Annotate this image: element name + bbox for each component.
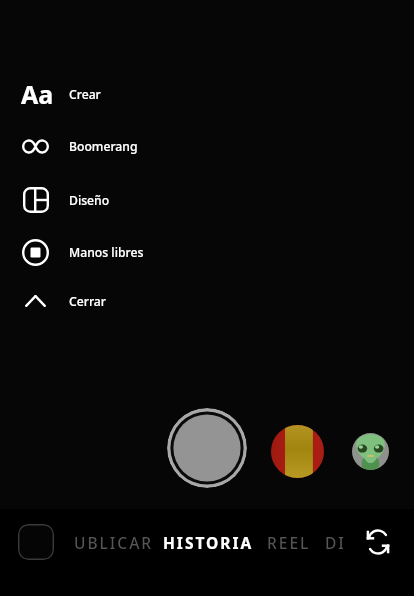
button[interactable]: Cambiar cámara [360,524,396,560]
staticText: Manos libres [69,244,144,261]
staticText: HISTORIA [163,532,254,553]
button[interactable]: Galería [18,524,54,560]
staticText: Boomerang [69,138,138,155]
button[interactable]: DI [325,528,346,556]
staticText: UBLICAR [74,532,154,553]
button[interactable]: Diseño [13,182,124,218]
button[interactable]: UBLICAR [74,528,154,556]
button[interactable]: Cerrar [13,283,120,319]
button[interactable]: Manos libres [13,234,158,270]
staticText: Cerrar [69,293,106,310]
staticText: Aa [21,77,54,111]
staticText: Crear [69,86,101,103]
staticText: REEL [267,532,311,553]
button[interactable]: Filtro alien [352,433,389,470]
button[interactable]: HISTORIA [163,528,254,556]
button[interactable]: Filtro bandera de España [271,425,324,478]
button[interactable]: REEL [267,528,311,556]
staticText: DI [325,532,346,553]
button[interactable]: Boomerang [13,128,152,164]
button[interactable]: Capturar [167,408,247,488]
staticText: Diseño [69,192,110,209]
button[interactable]: Aa [13,76,115,112]
